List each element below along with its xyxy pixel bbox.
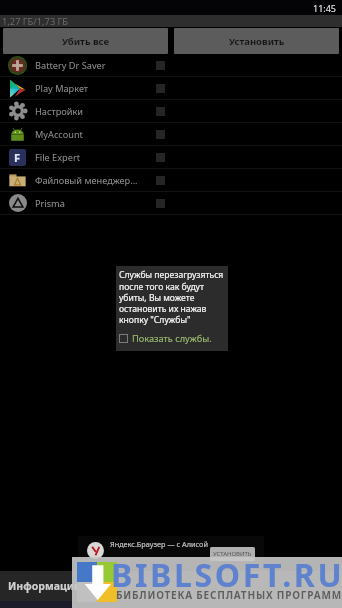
button[interactable]: Яндекс.Браузер — с Алисой — [78, 536, 264, 562]
button[interactable]: Battery Dr Saver — [0, 54, 171, 76]
button[interactable]: Prisma — [0, 192, 171, 214]
button[interactable]: Убить все — [3, 28, 168, 54]
staticText: 11:45 — [313, 2, 337, 14]
button[interactable]: Настройки — [0, 100, 171, 122]
button[interactable]: Файловый менеджер... — [0, 169, 171, 191]
staticText: Информация — [8, 579, 81, 593]
staticText: F — [14, 150, 21, 165]
button[interactable]: Информация — [0, 571, 342, 601]
staticText: Файловый менеджер... — [35, 174, 156, 187]
staticText: Установить — [229, 35, 285, 48]
staticText: Службы перезагрузяться после того как бу… — [119, 269, 224, 325]
staticText: Play Маркет — [35, 82, 156, 95]
staticText: 1,27 ГБ/1,73 ГБ — [2, 15, 69, 27]
staticText: Prisma — [35, 197, 156, 210]
staticText: Battery Dr Saver — [35, 59, 156, 72]
staticText: Яндекс.Браузер — с Алисой — [110, 539, 208, 549]
staticText: Показать службы. — [132, 332, 212, 345]
button[interactable]: Показать службы. — [119, 331, 225, 346]
button[interactable]: Установить — [174, 28, 339, 54]
staticText: БИБЛИОТЕКА БЕСПЛАТНЫХ ПРОГРАММ — [116, 588, 342, 602]
button[interactable]: MyAccount — [0, 123, 171, 145]
staticText: УСТАНОВИТЬ — [213, 550, 252, 558]
button[interactable]: УСТАНОВИТЬ — [210, 547, 255, 561]
staticText: BIBLSOFT.RU — [111, 553, 342, 597]
staticText: Настройки — [35, 105, 156, 118]
staticText: MyAccount — [35, 128, 156, 141]
button[interactable]: Play Маркет — [0, 77, 171, 99]
staticText: File Expert — [35, 151, 156, 164]
staticText: Убить все — [62, 35, 110, 48]
button[interactable]: F — [0, 146, 171, 168]
